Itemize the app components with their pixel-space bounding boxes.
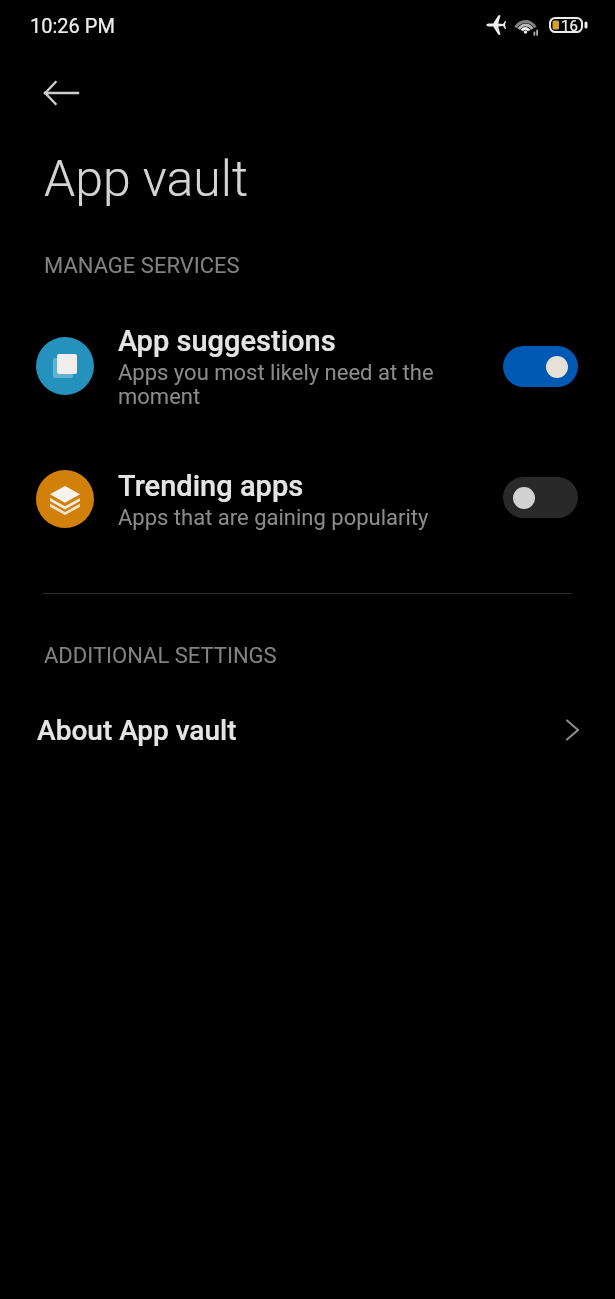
- button[interactable]: Back: [37, 69, 85, 117]
- staticText: Trending apps: [118, 469, 304, 503]
- staticText: About App vault: [37, 714, 555, 747]
- staticText: ADDITIONAL SETTINGS: [44, 643, 277, 669]
- staticText: Apps that are gaining popularity: [118, 505, 429, 531]
- button[interactable]: About App vault: [0, 694, 615, 766]
- staticText: 16: [561, 17, 578, 33]
- other: Airplane mode: [486, 15, 506, 35]
- staticText: App suggestions: [118, 324, 336, 358]
- button[interactable]: Trending apps: [0, 457, 615, 565]
- button[interactable]: Trending apps off: [503, 477, 578, 518]
- other: Wi-Fi: [514, 12, 539, 37]
- button[interactable]: App suggestions on: [503, 346, 578, 387]
- other: Battery 16 percent: [549, 17, 588, 33]
- staticText: Apps you most likely need at the moment: [118, 360, 434, 409]
- staticText: App vault: [44, 150, 249, 209]
- staticText: 10:26 PM: [30, 14, 115, 37]
- button[interactable]: App suggestions: [0, 312, 615, 420]
- staticText: MANAGE SERVICES: [44, 253, 240, 279]
